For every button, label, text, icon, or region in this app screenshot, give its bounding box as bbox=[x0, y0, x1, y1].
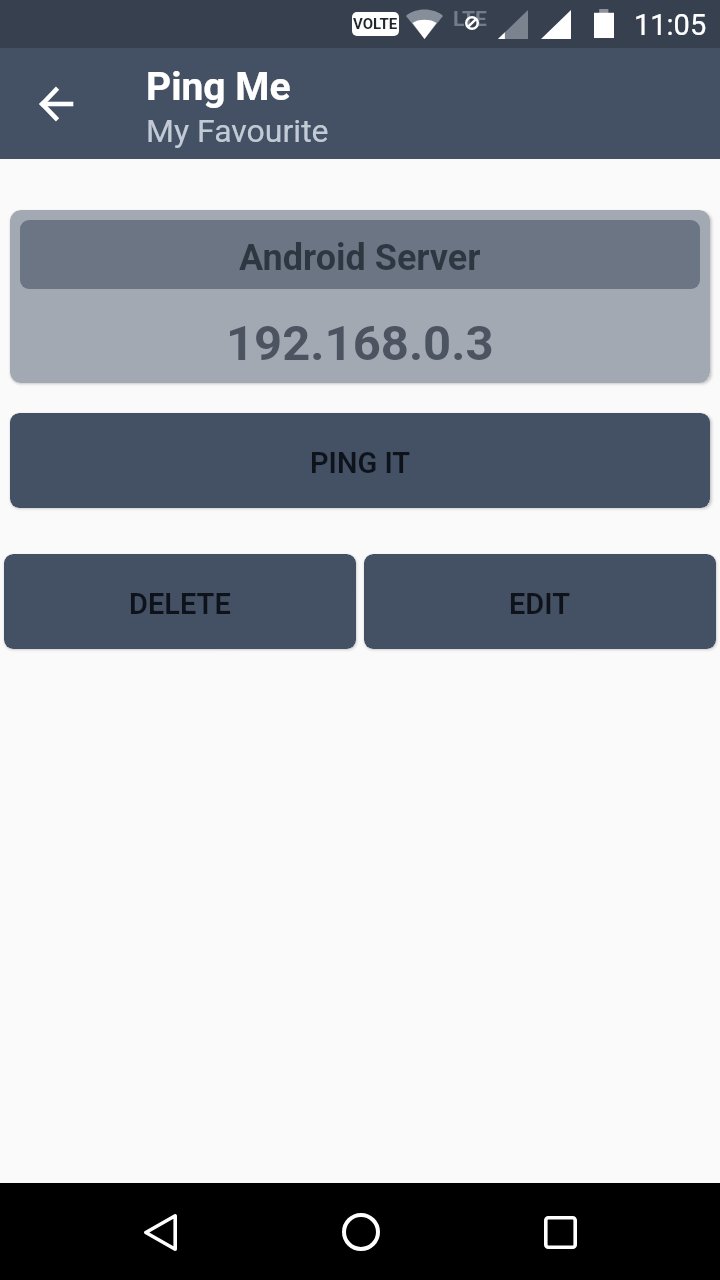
button[interactable]: DELETE bbox=[4, 554, 356, 649]
button[interactable]: Back bbox=[120, 1192, 200, 1272]
staticText: DELETE bbox=[129, 587, 231, 621]
staticText: PING IT bbox=[310, 446, 411, 480]
staticText: My Favourite bbox=[146, 112, 329, 150]
staticText: 192.168.0.3 bbox=[226, 315, 494, 372]
staticText: 11:05 bbox=[634, 8, 707, 42]
staticText: EDIT bbox=[509, 587, 571, 621]
staticText: Ping Me bbox=[146, 64, 291, 110]
button[interactable]: Home bbox=[321, 1192, 401, 1272]
button[interactable]: Back bbox=[12, 48, 101, 159]
staticText: VOLTE bbox=[353, 15, 398, 33]
button[interactable]: Android Server bbox=[10, 210, 710, 383]
staticText: LTE bbox=[453, 7, 487, 32]
button[interactable]: PING IT bbox=[10, 413, 710, 508]
staticText: Android Server bbox=[239, 237, 481, 279]
button[interactable]: EDIT bbox=[364, 554, 716, 649]
button[interactable]: Recent apps bbox=[520, 1192, 600, 1272]
